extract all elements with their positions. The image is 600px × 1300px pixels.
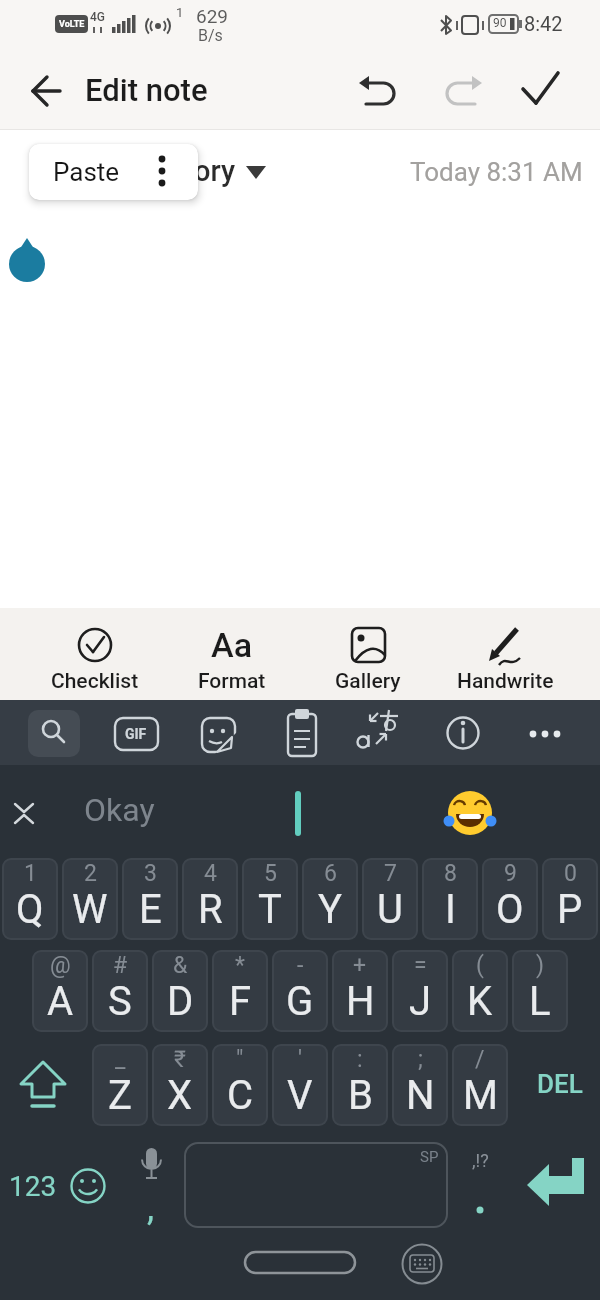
button[interactable]: [452, 1140, 510, 1226]
staticText: L: [529, 978, 551, 1025]
button[interactable]: #: [92, 950, 148, 1032]
button[interactable]: [8, 1044, 84, 1128]
button[interactable]: [350, 65, 410, 117]
button[interactable]: [60, 780, 240, 846]
staticText: 3: [144, 860, 157, 887]
staticText: G: [286, 978, 314, 1025]
button[interactable]: [6, 790, 50, 838]
staticText: B/s: [198, 26, 223, 45]
staticText: _: [115, 1046, 126, 1073]
button[interactable]: [437, 708, 489, 760]
staticText: :: [357, 1046, 363, 1073]
button[interactable]: Paste: [29, 144, 198, 200]
button[interactable]: [118, 1140, 180, 1226]
staticText: 4: [204, 860, 217, 887]
staticText: Paste: [53, 157, 120, 187]
button[interactable]: [516, 1140, 594, 1226]
button[interactable]: [184, 1142, 448, 1228]
button[interactable]: _: [92, 1044, 148, 1126]
button[interactable]: 8: [422, 858, 478, 940]
staticText: Format: [198, 669, 266, 694]
staticText: ": [236, 1046, 244, 1073]
staticText: S: [108, 978, 132, 1025]
button[interactable]: [6, 1140, 62, 1226]
button[interactable]: (: [452, 950, 508, 1032]
button[interactable]: [398, 1242, 446, 1288]
staticText: N: [406, 1072, 435, 1119]
button[interactable]: [28, 710, 80, 757]
button[interactable]: [355, 708, 407, 760]
button[interactable]: @: [32, 950, 88, 1032]
button[interactable]: 9: [482, 858, 538, 940]
staticText: P: [557, 886, 583, 933]
staticText: V: [287, 1072, 313, 1119]
staticText: F: [229, 978, 252, 1025]
button[interactable]: 2: [62, 858, 118, 940]
button[interactable]: ': [272, 1044, 328, 1126]
button[interactable]: -: [272, 950, 328, 1032]
staticText: Aa: [211, 625, 253, 665]
button[interactable]: :: [332, 1044, 388, 1126]
button[interactable]: +: [332, 950, 388, 1032]
button[interactable]: ): [512, 950, 568, 1032]
staticText: @: [50, 952, 71, 979]
button[interactable]: [240, 1246, 360, 1278]
staticText: Edit note: [85, 72, 208, 108]
staticText: U: [377, 886, 403, 933]
button[interactable]: &: [152, 950, 208, 1032]
button[interactable]: [40, 612, 150, 696]
staticText: 1: [24, 860, 37, 887]
staticText: ': [298, 1046, 303, 1073]
staticText: Y: [318, 886, 343, 933]
staticText: R: [198, 886, 223, 933]
button[interactable]: *: [212, 950, 268, 1032]
button[interactable]: ;: [392, 1044, 448, 1126]
staticText: +: [353, 952, 367, 979]
button[interactable]: /: [452, 1044, 508, 1126]
staticText: I: [445, 886, 456, 933]
staticText: =: [414, 952, 427, 979]
staticText: ,!?: [472, 1150, 489, 1171]
staticText: ;: [418, 1046, 423, 1073]
staticText: W: [72, 886, 108, 933]
button[interactable]: 4: [182, 858, 238, 940]
staticText: 8:42: [524, 12, 563, 35]
staticText: 4G: [90, 10, 105, 24]
button[interactable]: 5: [242, 858, 298, 940]
staticText: 6: [324, 860, 337, 887]
button[interactable]: =: [392, 950, 448, 1032]
button[interactable]: ₹: [152, 1044, 208, 1126]
button[interactable]: 7: [362, 858, 418, 940]
button[interactable]: [191, 708, 243, 760]
button[interactable]: 0: [542, 858, 598, 940]
button[interactable]: [450, 612, 560, 696]
button[interactable]: [177, 612, 287, 696]
button[interactable]: [110, 708, 162, 760]
staticText: T: [258, 886, 282, 933]
button[interactable]: [64, 1140, 114, 1226]
button[interactable]: [313, 612, 423, 696]
button[interactable]: [180, 145, 280, 200]
button[interactable]: [430, 65, 490, 117]
staticText: E: [139, 886, 162, 933]
staticText: Today 8:31 AM: [410, 157, 583, 187]
staticText: 5: [264, 860, 277, 887]
button[interactable]: [518, 1044, 596, 1128]
button[interactable]: [20, 65, 75, 117]
staticText: 0: [564, 860, 577, 887]
staticText: ₹: [174, 1046, 186, 1073]
staticText: ory: [194, 154, 236, 188]
button[interactable]: 3: [122, 858, 178, 940]
button[interactable]: 6: [302, 858, 358, 940]
button[interactable]: ": [212, 1044, 268, 1126]
button[interactable]: [510, 65, 570, 117]
staticText: ,: [147, 1187, 155, 1229]
button[interactable]: [420, 780, 520, 846]
button[interactable]: 1: [2, 858, 58, 940]
button[interactable]: [519, 708, 571, 760]
staticText: A: [47, 978, 74, 1025]
staticText: 8: [444, 860, 457, 887]
staticText: Checklist: [51, 669, 139, 694]
button[interactable]: [274, 708, 326, 760]
staticText: B: [348, 1072, 373, 1119]
